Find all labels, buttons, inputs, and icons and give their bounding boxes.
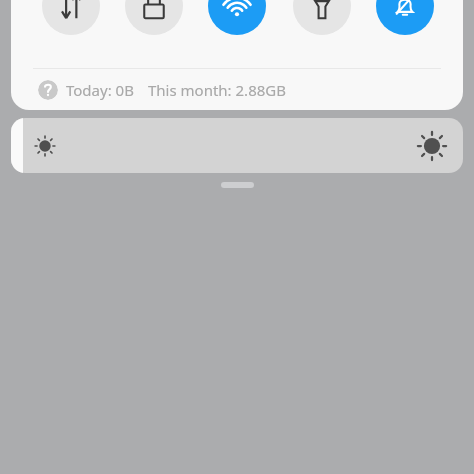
button[interactable]: Help [38, 80, 58, 100]
button[interactable]: Screen lock [125, 0, 183, 35]
button[interactable]: Mute [376, 0, 434, 35]
button[interactable]: Flashlight [293, 0, 351, 35]
button[interactable]: Wi-Fi [208, 0, 266, 35]
button[interactable]: Data transfer [42, 0, 100, 35]
staticText: This month: 2.88GB [148, 80, 286, 100]
staticText: Today: 0B [66, 80, 134, 100]
button[interactable]: Brightness [11, 118, 463, 173]
